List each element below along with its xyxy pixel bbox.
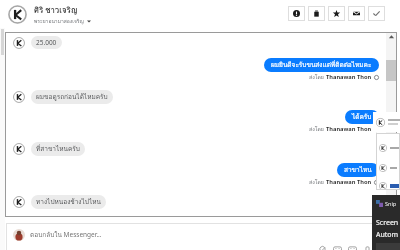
button[interactable]: Info bbox=[288, 6, 305, 21]
button[interactable]: Delete bbox=[308, 6, 325, 21]
button[interactable]: Emoji bbox=[347, 244, 358, 250]
button[interactable]: Like bbox=[362, 244, 373, 250]
staticText: ได้ครับ bbox=[352, 112, 372, 122]
button[interactable]: ผมขอดูรถก่อนได้ไหมครับ bbox=[13, 90, 113, 104]
staticText: Autom bbox=[376, 230, 399, 240]
staticText: ส่งโดย bbox=[309, 125, 326, 133]
button[interactable]: 25.000 bbox=[13, 36, 62, 49]
button[interactable] bbox=[379, 164, 397, 172]
staticText: ทางไปหนองช้างไปไหน bbox=[36, 197, 101, 207]
button[interactable]: Mark unread bbox=[348, 6, 365, 21]
staticText: Thanawan Thon bbox=[326, 178, 372, 186]
button[interactable]: Star bbox=[328, 6, 345, 21]
staticText: ส่งโดย bbox=[309, 73, 326, 81]
button[interactable]: สาขาไหน bbox=[337, 163, 379, 177]
button[interactable]: Sticker bbox=[332, 244, 343, 250]
staticText: ส่งโดย bbox=[309, 178, 326, 186]
button[interactable]: ตอบกลับใน Messenger... bbox=[6, 223, 397, 246]
staticText: Thanawan Thon bbox=[326, 125, 372, 133]
button[interactable] bbox=[379, 182, 400, 190]
button[interactable]: ที่สาขาไหนครับ bbox=[13, 142, 85, 156]
staticText: ผมขอดูรถก่อนได้ไหมครับ bbox=[36, 92, 108, 102]
staticText: สาขาไหน bbox=[344, 165, 372, 175]
staticText: Screen bbox=[376, 218, 399, 228]
staticText: ศิริ ชาวเจริญ bbox=[34, 4, 78, 16]
button[interactable]: Done bbox=[368, 6, 385, 21]
staticText: Snip bbox=[385, 200, 397, 207]
button[interactable]: ได้ครับ bbox=[345, 110, 379, 124]
staticText: ผมยินดีจะรับขนส่งแต่พี่ติดต่อไหมคะ bbox=[271, 60, 372, 70]
staticText: พระยาอนามาสองเจริญ bbox=[34, 17, 84, 25]
button[interactable] bbox=[376, 112, 400, 132]
staticText: ที่สาขาไหนครับ bbox=[36, 144, 80, 154]
staticText: ตอบกลับใน Messenger... bbox=[30, 230, 102, 240]
staticText: Thanawan Thon bbox=[326, 73, 372, 81]
staticText: 25.000 bbox=[36, 38, 57, 47]
button[interactable]: ทางไปหนองช้างไปไหน bbox=[13, 195, 106, 209]
button[interactable]: ผมยินดีจะรับขนส่งแต่พี่ติดต่อไหมคะ bbox=[264, 58, 379, 72]
button[interactable]: Attach file bbox=[317, 244, 328, 250]
button[interactable] bbox=[379, 144, 399, 152]
